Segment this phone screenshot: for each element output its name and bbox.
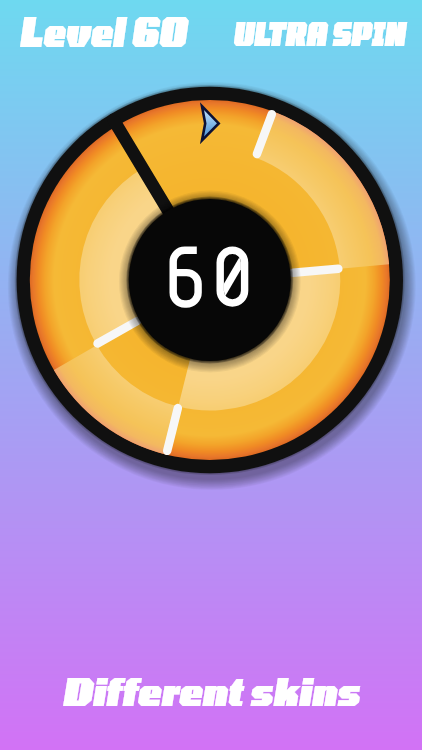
- button[interactable]: Level 60: [19, 7, 187, 54]
- button[interactable]: ULTRA SPIN: [233, 13, 405, 52]
- button[interactable]: Different skins: [62, 668, 360, 714]
